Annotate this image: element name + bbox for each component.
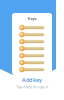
button[interactable] [19,45,45,52]
staticText: Add key [22,76,42,84]
button[interactable] [19,31,45,38]
button[interactable] [19,66,45,73]
staticText: Tap a key to copy it [16,84,48,89]
button[interactable] [19,24,45,31]
button[interactable] [19,52,45,59]
staticText: Keys [27,16,36,21]
button[interactable]: Add key [22,76,42,84]
button[interactable] [19,38,45,45]
button[interactable] [19,59,45,66]
